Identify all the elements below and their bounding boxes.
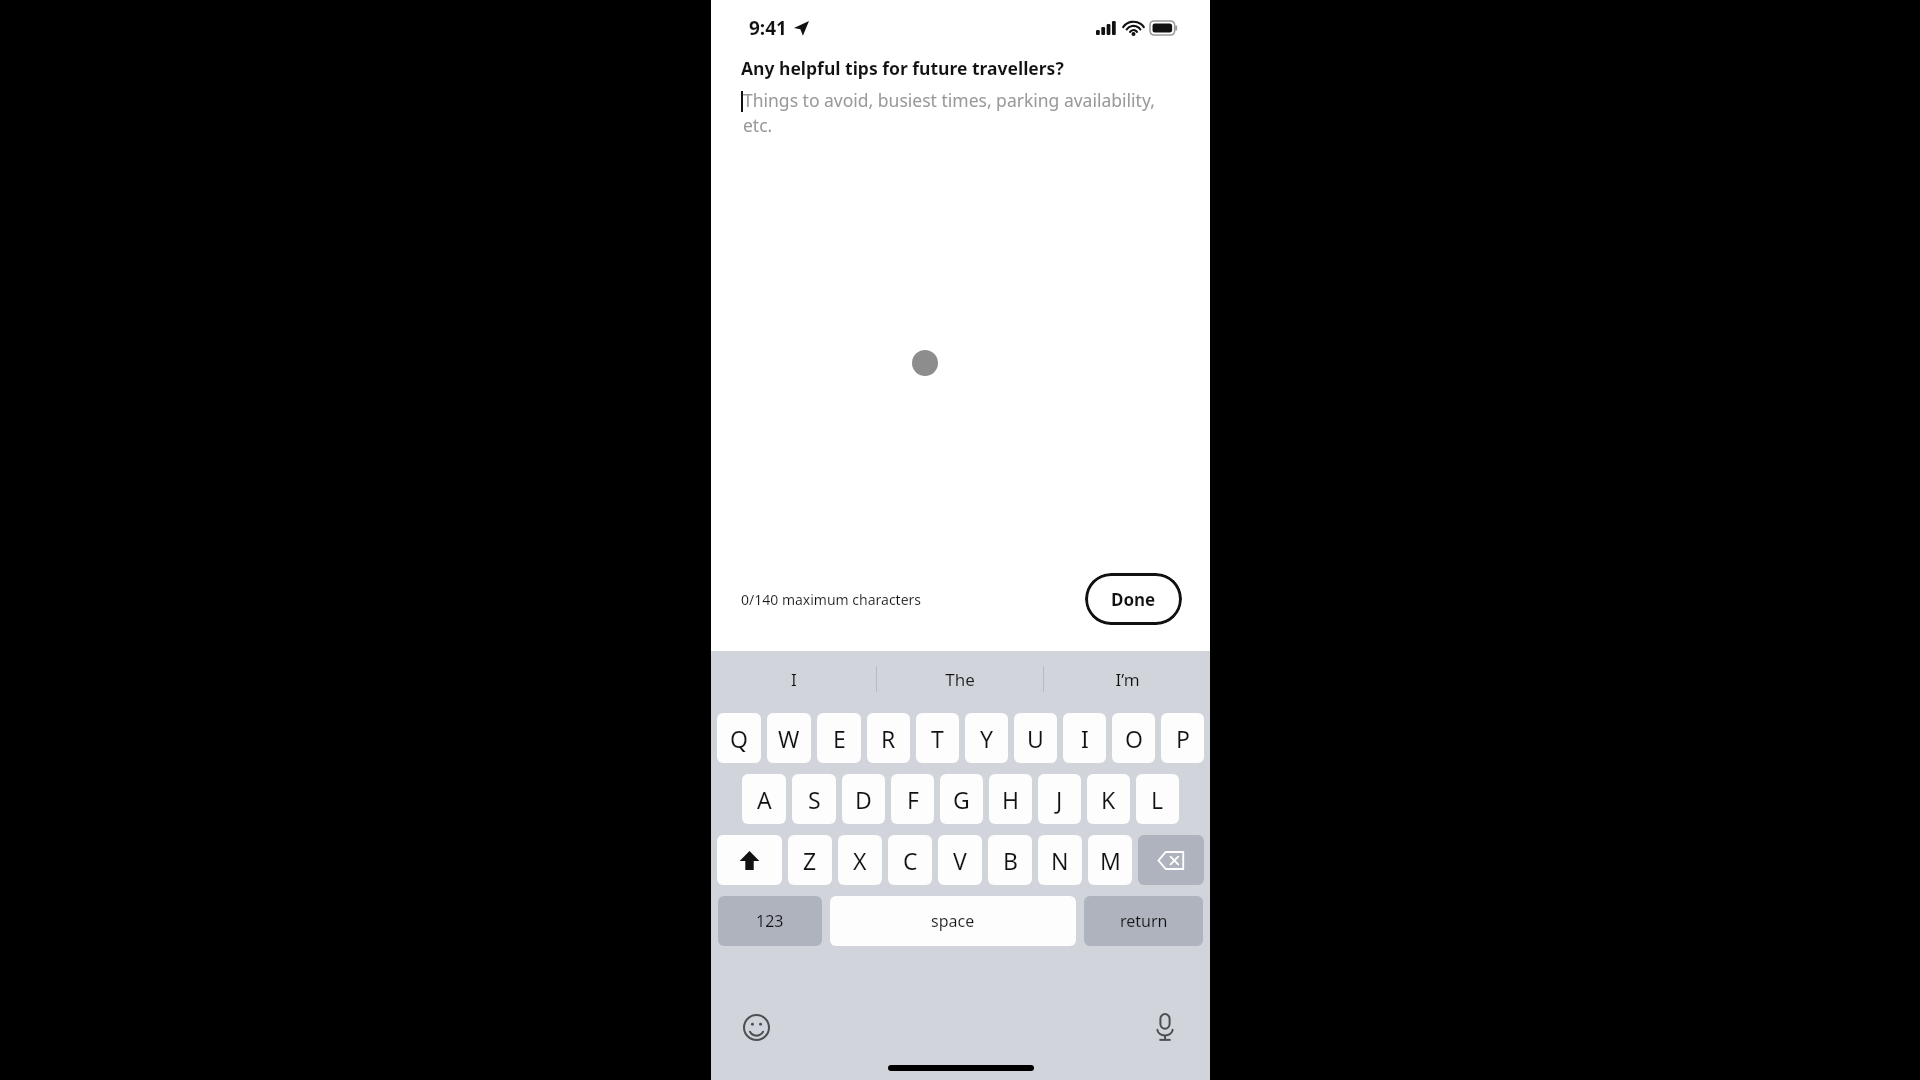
staticText: S — [808, 784, 821, 815]
button[interactable]: space — [830, 896, 1076, 946]
button[interactable]: R — [867, 713, 910, 763]
button[interactable]: J — [1038, 774, 1081, 824]
button[interactable]: Shift — [717, 835, 782, 885]
button[interactable]: Dictation — [1148, 1010, 1182, 1044]
button[interactable]: G — [940, 774, 983, 824]
staticText: A — [757, 784, 772, 815]
staticText: space — [931, 910, 975, 932]
button[interactable]: X — [838, 835, 882, 885]
staticText: D — [855, 784, 872, 815]
button[interactable]: W — [767, 713, 811, 763]
button[interactable]: S — [792, 774, 836, 824]
staticText: X — [853, 845, 867, 876]
button[interactable]: L — [1136, 774, 1179, 824]
staticText: Done — [1111, 588, 1156, 611]
staticText: I — [791, 668, 797, 691]
staticText: B — [1003, 845, 1018, 876]
button[interactable]: O — [1112, 713, 1155, 763]
button[interactable]: The — [877, 651, 1043, 707]
staticText: I’m — [1115, 668, 1140, 691]
button[interactable]: E — [817, 713, 861, 763]
button[interactable]: Emoji — [739, 1010, 773, 1044]
staticText: M — [1100, 845, 1121, 876]
button[interactable]: K — [1087, 774, 1130, 824]
button[interactable]: Y — [965, 713, 1008, 763]
staticText: R — [881, 723, 896, 754]
button[interactable]: I — [711, 651, 876, 707]
staticText: F — [907, 784, 919, 815]
button[interactable]: M — [1088, 835, 1132, 885]
staticText: P — [1176, 723, 1190, 754]
staticText: K — [1101, 784, 1116, 815]
button[interactable]: I — [1063, 713, 1106, 763]
staticText: C — [903, 845, 918, 876]
button[interactable]: I’m — [1044, 651, 1210, 707]
staticText: N — [1051, 845, 1069, 876]
staticText: V — [953, 845, 967, 876]
button[interactable]: N — [1038, 835, 1082, 885]
staticText: 123 — [756, 910, 784, 932]
staticText: J — [1056, 784, 1063, 815]
button[interactable]: Z — [788, 835, 832, 885]
staticText: O — [1125, 723, 1143, 754]
staticText: G — [953, 784, 970, 815]
button[interactable]: H — [989, 774, 1032, 824]
button[interactable]: Done — [1085, 573, 1182, 625]
staticText: T — [931, 723, 944, 754]
button[interactable]: A — [742, 774, 786, 824]
button[interactable]: U — [1014, 713, 1057, 763]
button[interactable]: F — [891, 774, 934, 824]
staticText: H — [1002, 784, 1020, 815]
button[interactable]: return — [1084, 896, 1203, 946]
staticText: E — [833, 723, 846, 754]
staticText: W — [778, 723, 800, 754]
staticText: U — [1027, 723, 1044, 754]
staticText: 9:41 — [749, 15, 787, 41]
button[interactable]: 123 — [718, 896, 822, 946]
staticText: return — [1120, 910, 1168, 932]
staticText: Y — [980, 723, 994, 754]
button[interactable]: T — [916, 713, 959, 763]
staticText: 0/140 maximum characters — [741, 590, 922, 609]
staticText: Z — [803, 845, 817, 876]
button[interactable]: D — [842, 774, 885, 824]
staticText: The — [945, 668, 975, 691]
staticText: Q — [730, 723, 748, 754]
button[interactable]: Q — [717, 713, 761, 763]
staticText: I — [1081, 723, 1089, 754]
button[interactable]: V — [938, 835, 982, 885]
staticText: L — [1151, 784, 1164, 815]
button[interactable]: B — [988, 835, 1032, 885]
button[interactable]: Backspace — [1138, 835, 1204, 885]
staticText: Any helpful tips for future travellers? — [741, 56, 1064, 80]
button[interactable]: P — [1161, 713, 1204, 763]
staticText: Things to avoid, busiest times, parking … — [743, 88, 1180, 138]
button[interactable]: C — [888, 835, 932, 885]
